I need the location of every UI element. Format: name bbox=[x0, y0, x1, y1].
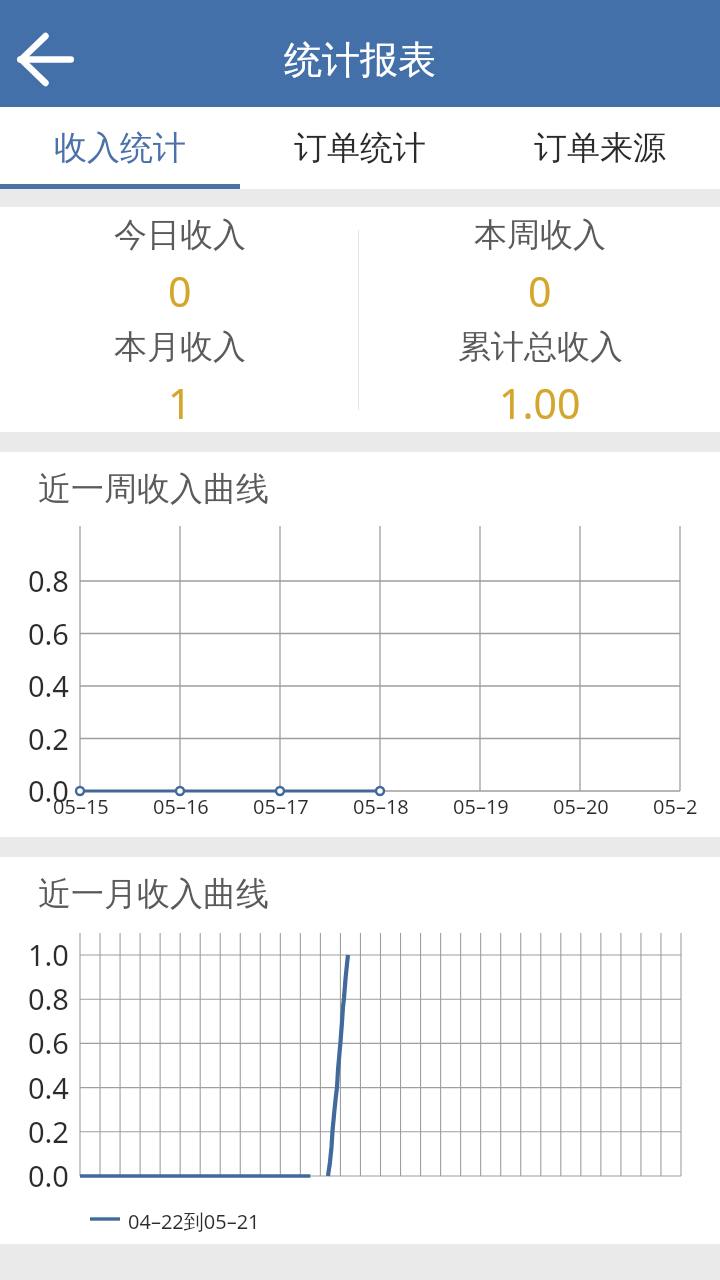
staticText: 0.2 bbox=[28, 1112, 69, 1151]
staticText: 05–2 bbox=[653, 793, 698, 820]
staticText: 0.0 bbox=[28, 771, 69, 810]
staticText: 05–16 bbox=[153, 793, 209, 820]
staticText: 订单统计 bbox=[294, 127, 426, 169]
button[interactable]: Back bbox=[6, 20, 85, 99]
staticText: 05–17 bbox=[253, 793, 309, 820]
staticText: 1 bbox=[168, 375, 192, 431]
staticText: 0 bbox=[528, 263, 552, 319]
staticText: 0.8 bbox=[28, 979, 69, 1018]
staticText: 统计报表 bbox=[284, 36, 436, 84]
staticText: 05–18 bbox=[353, 793, 409, 820]
staticText: 0.2 bbox=[28, 719, 69, 758]
staticText: 04–22到05–21 bbox=[128, 1208, 260, 1235]
staticText: 0.6 bbox=[28, 1023, 69, 1062]
staticText: 05–20 bbox=[553, 793, 609, 820]
staticText: 本周收入 bbox=[474, 214, 606, 256]
staticText: 近一周收入曲线 bbox=[38, 468, 269, 510]
staticText: 1.00 bbox=[499, 375, 581, 431]
staticText: 05–15 bbox=[53, 793, 109, 820]
staticText: 本月收入 bbox=[114, 326, 246, 368]
staticText: 1.0 bbox=[28, 935, 69, 974]
staticText: 05–19 bbox=[453, 793, 509, 820]
staticText: 今日收入 bbox=[114, 214, 246, 256]
button[interactable]: 订单统计 bbox=[240, 107, 480, 189]
staticText: 0.6 bbox=[28, 614, 69, 653]
button[interactable]: 订单来源 bbox=[480, 107, 720, 189]
staticText: 累计总收入 bbox=[458, 326, 623, 368]
button[interactable]: 收入统计 bbox=[0, 107, 240, 189]
staticText: 0.8 bbox=[28, 561, 69, 600]
staticText: 订单来源 bbox=[534, 127, 666, 169]
staticText: 近一月收入曲线 bbox=[38, 873, 269, 915]
staticText: 0.4 bbox=[28, 666, 69, 705]
staticText: 0.0 bbox=[28, 1156, 69, 1195]
staticText: 0.4 bbox=[28, 1068, 69, 1107]
staticText: 0 bbox=[168, 263, 192, 319]
staticText: 收入统计 bbox=[54, 127, 186, 169]
